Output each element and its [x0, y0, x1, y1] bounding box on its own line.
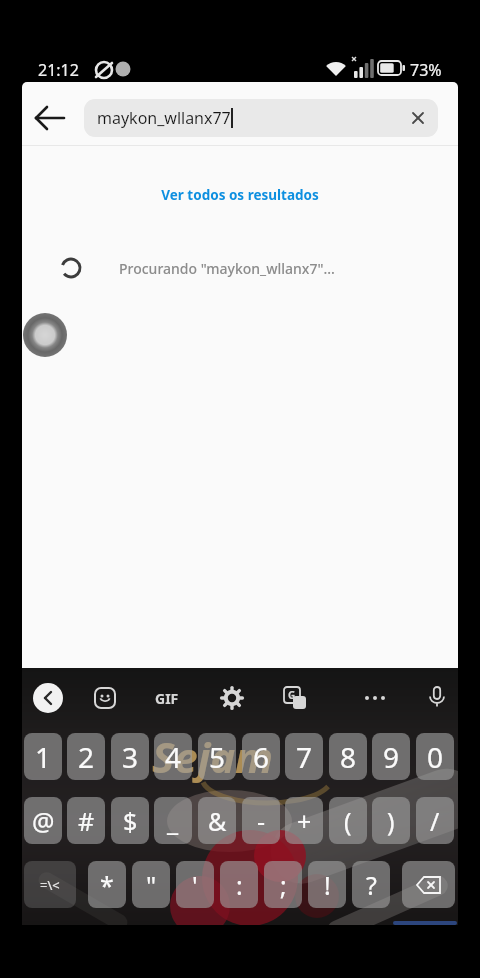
- staticText: 9: [383, 738, 400, 776]
- button[interactable]: 2: [67, 733, 105, 780]
- staticText: maykon_wllanx77: [97, 107, 231, 129]
- button[interactable]: $: [111, 797, 149, 844]
- staticText: Procurando "maykon_wllanx7"...: [119, 259, 335, 278]
- button[interactable]: Ver todos os resultados: [22, 180, 458, 210]
- staticText: 4: [165, 738, 182, 776]
- button[interactable]: *: [88, 861, 126, 908]
- staticText: 21:12: [38, 59, 79, 81]
- staticText: 2: [78, 738, 95, 776]
- staticText: 0: [427, 738, 444, 776]
- staticText: ;: [280, 868, 287, 902]
- button[interactable]: 9: [372, 733, 410, 780]
- button[interactable]: 6: [242, 733, 280, 780]
- staticText: $: [123, 804, 138, 838]
- button[interactable]: #: [67, 797, 105, 844]
- button[interactable]: maykon_wllanx77: [84, 99, 438, 137]
- button[interactable]: 7: [285, 733, 323, 780]
- button[interactable]: [362, 686, 388, 712]
- staticText: ): [387, 804, 395, 838]
- button[interactable]: !: [308, 861, 346, 908]
- button[interactable]: [220, 686, 244, 710]
- button[interactable]: +: [285, 797, 323, 844]
- button[interactable]: [93, 686, 117, 710]
- button[interactable]: ;: [264, 861, 302, 908]
- button[interactable]: Procurando "maykon_wllanx7"...: [22, 248, 458, 288]
- button[interactable]: ': [176, 861, 214, 908]
- staticText: (: [344, 804, 352, 838]
- button[interactable]: -: [242, 797, 280, 844]
- button[interactable]: 0: [416, 733, 454, 780]
- staticText: 73%: [410, 59, 442, 81]
- staticText: 6: [253, 738, 270, 776]
- staticText: _: [167, 804, 179, 838]
- staticText: G: [288, 688, 296, 702]
- staticText: ": [146, 868, 157, 902]
- staticText: Ver todos os resultados: [161, 186, 319, 204]
- button[interactable]: [30, 98, 70, 138]
- button[interactable]: @: [24, 797, 62, 844]
- button[interactable]: 4: [154, 733, 192, 780]
- button[interactable]: (: [329, 797, 367, 844]
- button[interactable]: GIF: [155, 689, 179, 708]
- staticText: &: [208, 804, 227, 838]
- staticText: =\<: [40, 876, 60, 894]
- button[interactable]: G: [283, 686, 307, 710]
- staticText: Sejam: [152, 728, 274, 785]
- staticText: @: [32, 804, 55, 838]
- button[interactable]: [410, 110, 426, 126]
- staticText: /: [430, 804, 440, 838]
- button[interactable]: ": [132, 861, 170, 908]
- button[interactable]: ): [372, 797, 410, 844]
- button[interactable]: ?: [352, 861, 390, 908]
- button[interactable]: _: [154, 797, 192, 844]
- button[interactable]: =\<: [24, 861, 76, 908]
- staticText: 5: [209, 738, 226, 776]
- button[interactable]: 3: [111, 733, 149, 780]
- button[interactable]: [402, 861, 455, 908]
- button[interactable]: [425, 684, 449, 708]
- staticText: 3: [122, 738, 139, 776]
- button[interactable]: &: [198, 797, 236, 844]
- staticText: :: [236, 868, 243, 902]
- staticText: ': [192, 868, 198, 902]
- staticText: +: [297, 804, 312, 838]
- button[interactable]: 8: [329, 733, 367, 780]
- staticText: 8: [340, 738, 357, 776]
- button[interactable]: 5: [198, 733, 236, 780]
- staticText: 7: [296, 738, 313, 776]
- staticText: !: [324, 868, 331, 902]
- button[interactable]: [23, 313, 67, 357]
- staticText: #: [78, 804, 95, 838]
- button[interactable]: [33, 683, 63, 713]
- button[interactable]: :: [220, 861, 258, 908]
- button[interactable]: 1: [24, 733, 62, 780]
- staticText: ?: [366, 868, 377, 902]
- staticText: -: [257, 804, 266, 838]
- staticText: *: [100, 868, 114, 902]
- staticText: 1: [35, 738, 52, 776]
- button[interactable]: /: [416, 797, 454, 844]
